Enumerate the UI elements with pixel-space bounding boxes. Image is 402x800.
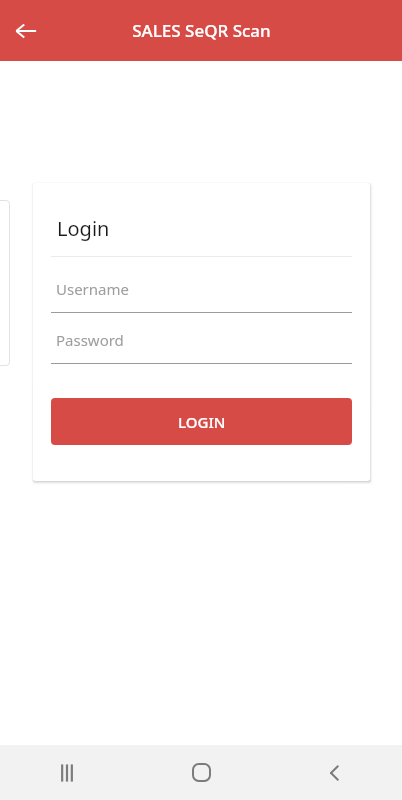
staticText: Password — [56, 330, 124, 350]
staticText: Login — [57, 215, 110, 242]
button[interactable]: Recent apps — [0, 745, 134, 800]
button[interactable]: Password — [51, 330, 352, 364]
button[interactable]: LOGIN — [51, 398, 352, 445]
staticText: SALES SeQR Scan — [132, 19, 271, 42]
button[interactable]: Back — [268, 745, 402, 800]
button[interactable]: Back — [6, 11, 46, 51]
staticText: LOGIN — [178, 412, 226, 432]
button[interactable]: Username — [51, 279, 352, 313]
staticText: Username — [56, 279, 129, 299]
button[interactable]: Home — [134, 745, 268, 800]
